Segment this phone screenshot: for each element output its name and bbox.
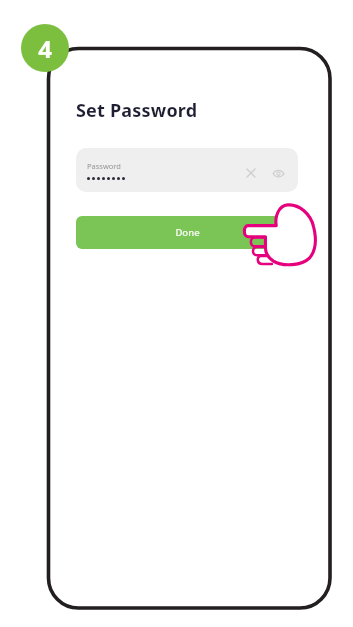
button[interactable]: Clear password <box>242 164 260 182</box>
staticText: Done <box>175 226 200 239</box>
staticText: 4 <box>38 32 52 65</box>
staticText: Set Password <box>76 98 198 123</box>
other: Tap here <box>246 196 318 270</box>
button[interactable]: Show password <box>269 164 287 182</box>
staticText: Password <box>87 161 121 171</box>
button[interactable]: Done <box>76 216 298 249</box>
button[interactable]: Password <box>76 148 298 192</box>
